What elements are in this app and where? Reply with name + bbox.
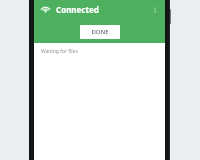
button[interactable]: DONE (80, 25, 120, 39)
staticText: DONE (91, 28, 109, 36)
button[interactable]: More options (147, 2, 162, 17)
button[interactable]: Wi-Fi connected (38, 2, 53, 17)
staticText: Connected (56, 4, 99, 15)
staticText: Waiting for files (41, 48, 78, 55)
